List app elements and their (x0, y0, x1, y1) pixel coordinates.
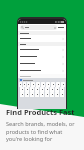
button[interactable]: Key (25, 87, 29, 92)
button[interactable]: Key (23, 82, 26, 87)
button[interactable]: Key (20, 92, 24, 97)
button[interactable]: Key (31, 82, 35, 87)
button[interactable]: Key (40, 92, 44, 97)
button[interactable] (18, 53, 66, 60)
button[interactable]: Key (35, 92, 39, 97)
button[interactable] (18, 60, 66, 67)
staticText: Search brands, models, or products to fi… (6, 120, 78, 142)
button[interactable] (18, 67, 66, 74)
button[interactable]: Key (50, 87, 54, 92)
button[interactable]: Key (51, 82, 55, 87)
button[interactable]: Key (27, 82, 30, 87)
button[interactable]: Key (60, 87, 64, 92)
button[interactable]: Key (30, 87, 34, 92)
button[interactable]: Key (46, 82, 50, 87)
button[interactable]: Key (45, 92, 49, 97)
button[interactable]: Key (19, 82, 22, 87)
button[interactable] (18, 46, 66, 53)
button[interactable]: Key (25, 92, 29, 97)
button[interactable]: Key (61, 82, 65, 87)
button[interactable] (18, 35, 66, 42)
staticText: Find Products Fast (6, 107, 75, 117)
button[interactable]: Key (40, 87, 44, 92)
button[interactable]: Key (36, 82, 40, 87)
button[interactable]: Key (56, 82, 60, 87)
button[interactable]: Key (60, 92, 64, 97)
button[interactable]: Key (20, 87, 24, 92)
button[interactable]: Key (50, 92, 54, 97)
button[interactable]: Key (45, 87, 49, 92)
button[interactable]: Key (41, 82, 45, 87)
button[interactable]: Key (55, 87, 59, 92)
button[interactable]: Key (55, 92, 59, 97)
button[interactable]: Key (35, 87, 39, 92)
button[interactable] (20, 25, 57, 30)
button[interactable]: Key (30, 92, 34, 97)
